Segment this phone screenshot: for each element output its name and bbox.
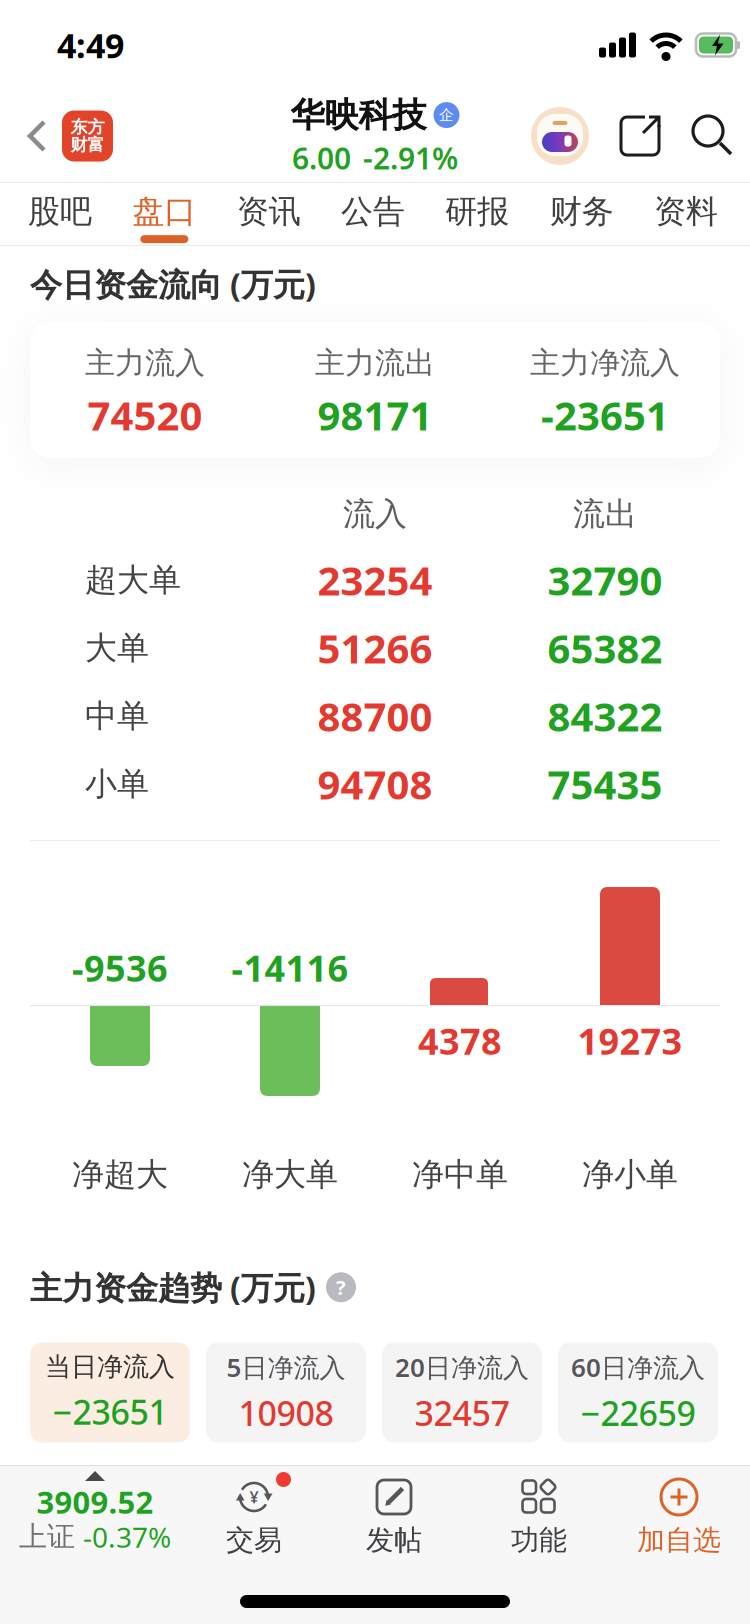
staticText: ¥ [249, 1486, 258, 1508]
button[interactable]: 盘口 [132, 185, 196, 243]
staticText: 3909.52 [36, 1481, 153, 1522]
staticText: 盘口 [132, 192, 196, 231]
staticText: 主力净流入 [530, 344, 680, 381]
button[interactable]: 功能 [470, 1466, 608, 1557]
staticText: 净超大 [72, 1155, 168, 1194]
staticText: 加自选 [637, 1523, 721, 1557]
staticText: 净小单 [582, 1155, 678, 1194]
staticText: 主力流出 [315, 344, 435, 381]
staticText: 上证 [19, 1520, 83, 1554]
button[interactable]: 交易 [190, 1466, 318, 1557]
staticText: 净中单 [412, 1155, 508, 1194]
staticText: 20日净流入 [395, 1350, 529, 1384]
button[interactable]: 发帖 [318, 1466, 470, 1557]
staticText: −23651 [52, 1389, 167, 1434]
staticText: 98171 [317, 388, 432, 441]
staticText: 32790 [547, 553, 662, 606]
staticText: 东方 [70, 117, 104, 137]
staticText: −22659 [580, 1390, 695, 1435]
staticText: 功能 [511, 1523, 567, 1557]
staticText: -9536 [72, 944, 168, 992]
staticText: 60日净流入 [571, 1350, 705, 1384]
staticText: 企 [439, 106, 454, 124]
staticText: ? [336, 1274, 346, 1301]
staticText: 75435 [547, 757, 662, 810]
button[interactable]: 5日净流入 [206, 1342, 366, 1442]
staticText: 资讯 [237, 192, 301, 231]
staticText: 74520 [87, 388, 202, 441]
button[interactable]: 智能助手 [531, 107, 589, 165]
staticText: 研报 [445, 192, 509, 231]
staticText: 84322 [547, 689, 662, 742]
staticText: 交易 [226, 1523, 282, 1557]
staticText: 财务 [550, 192, 614, 231]
staticText: 88700 [317, 689, 432, 742]
button[interactable]: 说明 [326, 1272, 356, 1302]
button[interactable]: 公告 [341, 185, 405, 243]
staticText: 资料 [654, 192, 718, 231]
button[interactable]: 上证指数 [0, 1468, 190, 1555]
staticText: 32457 [414, 1390, 509, 1435]
staticText: 主力流入 [85, 344, 205, 381]
staticText: 6.00 [292, 138, 351, 178]
staticText: 4:49 [57, 22, 124, 68]
button[interactable]: 财务 [550, 185, 614, 243]
staticText: 流出 [573, 494, 637, 534]
button[interactable]: 资讯 [237, 185, 301, 243]
button[interactable]: 加自选 [608, 1466, 750, 1557]
staticText: 公告 [341, 192, 405, 231]
button[interactable]: 当日净流入 [30, 1342, 190, 1442]
staticText: 财富 [70, 134, 104, 155]
staticText: 10908 [238, 1390, 333, 1435]
staticText: 65382 [547, 621, 662, 674]
button[interactable]: Search [662, 115, 750, 157]
staticText: 主力资金趋势 (万元) [30, 1266, 316, 1308]
staticText: -14116 [231, 944, 348, 992]
staticText: 小单 [85, 764, 149, 804]
staticText: 94708 [317, 757, 432, 810]
button[interactable]: 研报 [445, 185, 509, 243]
staticText: 发帖 [366, 1523, 422, 1557]
staticText: 超大单 [85, 560, 181, 600]
staticText: 华映科技 [290, 94, 426, 136]
staticText: 51266 [317, 621, 432, 674]
staticText: 流入 [343, 494, 407, 534]
button[interactable]: 60日净流入 [558, 1342, 718, 1442]
staticText: 中单 [85, 696, 149, 736]
button[interactable]: 20日净流入 [382, 1342, 542, 1442]
staticText: 23254 [317, 553, 432, 606]
staticText: -2.91% [363, 138, 458, 178]
staticText: 股吧 [28, 192, 92, 231]
staticText: 19273 [577, 1017, 682, 1065]
staticText: -23651 [541, 388, 669, 441]
staticText: 当日净流入 [45, 1351, 175, 1383]
button[interactable]: 东方财富 [48, 110, 113, 161]
staticText: 今日资金流向 (万元) [30, 263, 316, 305]
button[interactable]: 资料 [654, 185, 718, 243]
staticText: 净大单 [242, 1155, 338, 1194]
staticText: 4378 [418, 1017, 502, 1065]
staticText: 大单 [85, 628, 149, 668]
button[interactable]: Back [0, 119, 48, 153]
staticText: -0.37% [83, 1518, 171, 1555]
button[interactable]: 股吧 [28, 185, 92, 243]
button[interactable]: Share [589, 114, 662, 158]
staticText: 5日净流入 [226, 1350, 345, 1384]
